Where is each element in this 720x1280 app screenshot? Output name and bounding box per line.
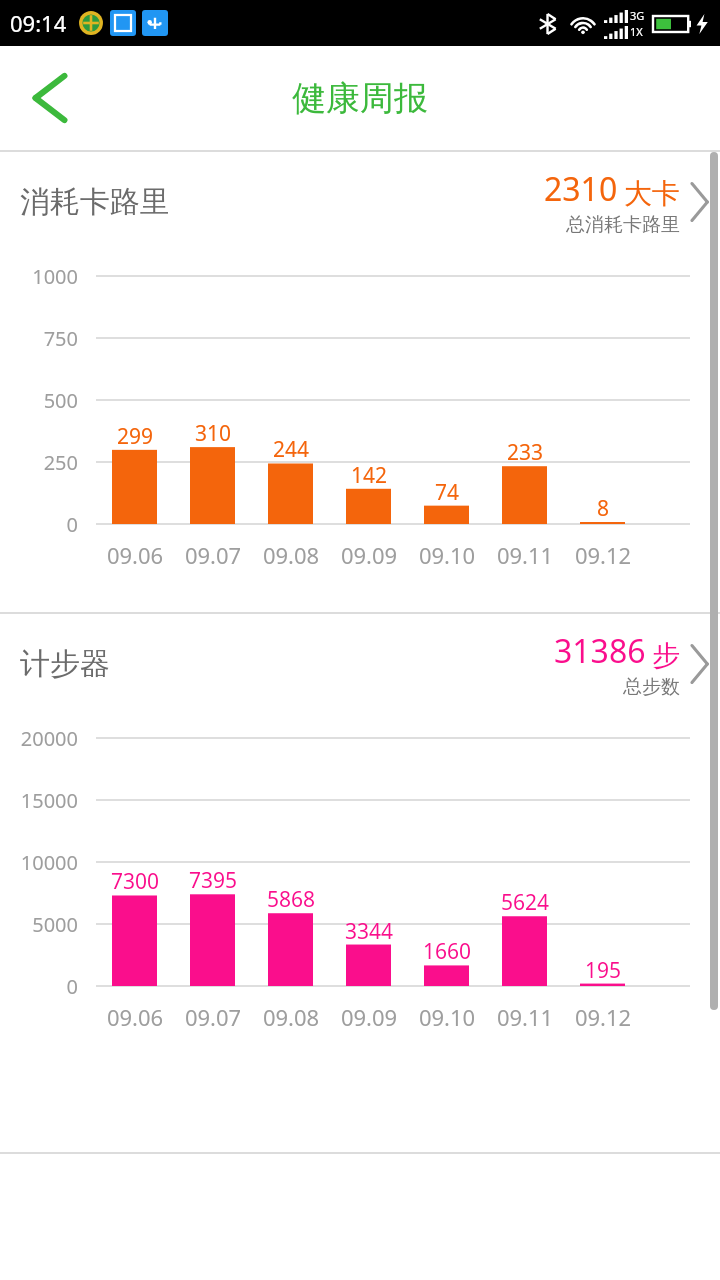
button[interactable]: 消耗卡路里 [0, 152, 720, 252]
staticText: 0 [0, 973, 78, 1000]
staticText: 健康周报 [292, 77, 428, 120]
staticText: 09.07 [168, 540, 258, 570]
staticText: 1000 [0, 263, 78, 290]
staticText: 09.12 [558, 540, 648, 570]
staticText: 09.08 [246, 540, 336, 570]
staticText: 250 [0, 449, 78, 476]
staticText: 195 [563, 956, 643, 985]
staticText: 0 [0, 511, 78, 538]
staticText: 09.07 [168, 1002, 258, 1032]
staticText: 总步数 [623, 675, 680, 699]
staticText: 500 [0, 387, 78, 414]
staticText: 步 [652, 638, 680, 673]
staticText: 750 [0, 325, 78, 352]
staticText: 299 [95, 422, 175, 451]
staticText: 计步器 [20, 645, 110, 683]
staticText: 15000 [0, 787, 78, 814]
staticText: 09.09 [324, 1002, 414, 1032]
staticText: 09.10 [402, 540, 492, 570]
staticText: 244 [251, 435, 331, 464]
button[interactable]: Back [14, 62, 86, 134]
staticText: 20000 [0, 725, 78, 752]
staticText: 233 [485, 438, 565, 467]
staticText: 74 [407, 478, 487, 507]
staticText: 09.06 [90, 1002, 180, 1032]
staticText: 5868 [251, 885, 331, 914]
staticText: 1X [630, 24, 643, 39]
staticText: 09.12 [558, 1002, 648, 1032]
staticText: 142 [329, 461, 409, 490]
staticText: 3G [630, 8, 645, 23]
staticText: 大卡 [624, 176, 680, 211]
staticText: 消耗卡路里 [20, 183, 170, 221]
staticText: 3344 [329, 917, 409, 946]
staticText: 1660 [407, 937, 487, 966]
staticText: 09.11 [480, 540, 570, 570]
staticText: 09.08 [246, 1002, 336, 1032]
staticText: 10000 [0, 849, 78, 876]
staticText: 31386 [554, 629, 646, 673]
staticText: 09.09 [324, 540, 414, 570]
staticText: 5000 [0, 911, 78, 938]
staticText: 7300 [95, 867, 175, 896]
staticText: 09.11 [480, 1002, 570, 1032]
staticText: 310 [173, 419, 253, 448]
staticText: 2310 [544, 167, 618, 211]
button[interactable]: 计步器 [0, 614, 720, 714]
staticText: 8 [563, 494, 643, 523]
staticText: 09.10 [402, 1002, 492, 1032]
staticText: 7395 [173, 866, 253, 895]
staticText: 5624 [485, 888, 565, 917]
staticText: 09:14 [10, 8, 67, 38]
staticText: 总消耗卡路里 [566, 213, 680, 237]
staticText: 09.06 [90, 540, 180, 570]
